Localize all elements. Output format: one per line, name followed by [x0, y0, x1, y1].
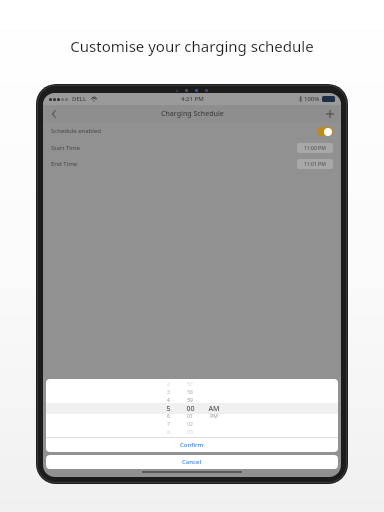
staticText: DELL [72, 95, 87, 103]
staticText: 02 [187, 421, 193, 428]
staticText: 59 [187, 397, 193, 404]
staticText: 6 [167, 413, 170, 420]
staticText: PM [210, 413, 218, 420]
button[interactable]: Add [319, 105, 341, 122]
button[interactable]: End Time [43, 156, 341, 172]
staticText: 5 [166, 404, 171, 412]
staticText: Cancel [182, 458, 202, 466]
button[interactable]: Confirm [46, 438, 338, 452]
staticText: 4:21 PM [181, 95, 204, 103]
staticText: Schedule enabled [51, 127, 101, 135]
staticText: Customise your charging schedule [0, 36, 384, 56]
staticText: 3 [167, 389, 170, 396]
staticText: 8 [167, 429, 170, 436]
staticText: 4 [167, 397, 170, 404]
button[interactable]: Cancel [46, 455, 338, 469]
staticText: AM [208, 404, 220, 412]
staticText: 00 [186, 404, 195, 412]
staticText: End Time [51, 160, 78, 168]
staticText: 03 [187, 429, 193, 436]
staticText: 11:00 PM [304, 145, 326, 152]
button[interactable]: Start Time [43, 140, 341, 156]
staticText: 100% [304, 95, 320, 103]
button[interactable]: Schedule enabled [43, 122, 341, 140]
staticText: 58 [187, 389, 193, 396]
staticText: 57 [187, 381, 193, 388]
staticText: Charging Schedule [161, 109, 224, 119]
staticText: 2 [167, 381, 170, 388]
staticText: 01 [187, 413, 193, 420]
staticText: 11:01 PM [304, 161, 326, 168]
staticText: Start Time [51, 144, 80, 152]
staticText: 7 [167, 421, 170, 428]
button[interactable]: Back [43, 105, 65, 122]
staticText: Confirm [180, 441, 204, 449]
